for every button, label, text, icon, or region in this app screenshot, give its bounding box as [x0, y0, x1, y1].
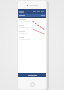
button[interactable]: [18, 73, 46, 77]
button[interactable]: [19, 25, 45, 29]
button[interactable]: [19, 19, 45, 23]
button[interactable]: [19, 37, 45, 41]
button[interactable]: Home: [30, 82, 35, 87]
button[interactable]: Menu item: [18, 9, 46, 14]
button[interactable]: [19, 31, 45, 35]
button[interactable]: [18, 14, 46, 17]
